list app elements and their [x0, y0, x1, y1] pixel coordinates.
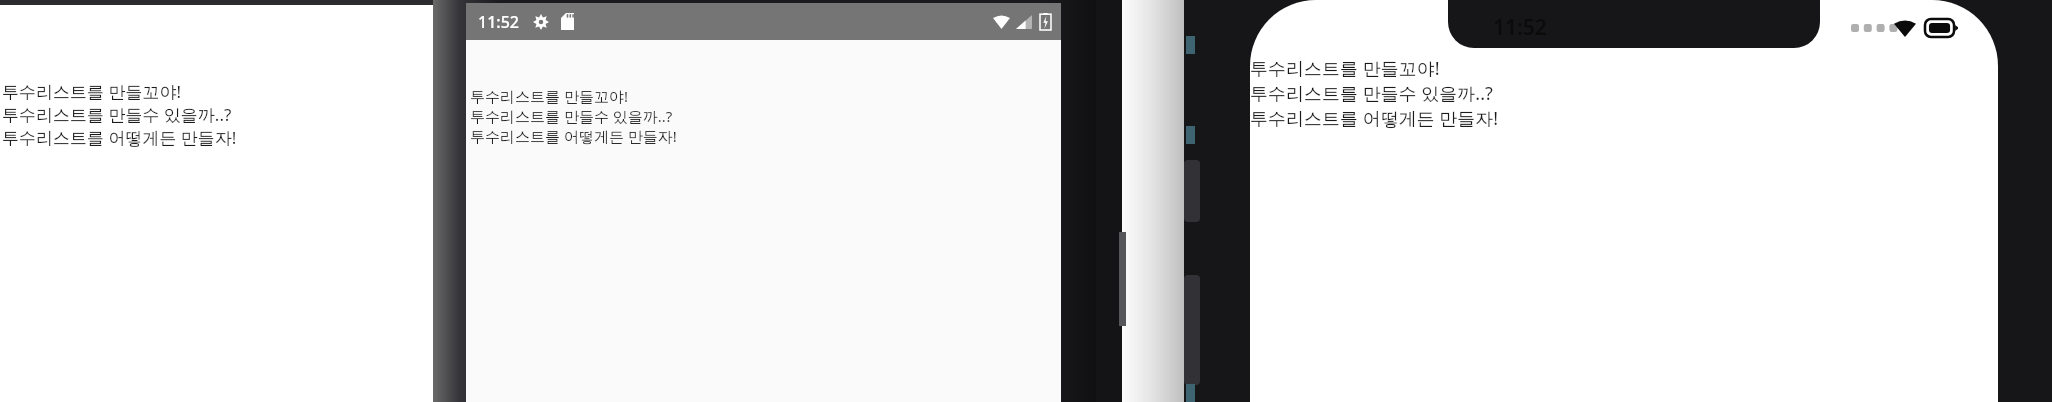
staticText: 투수리스트를 만들수 있을까..?	[1250, 81, 1493, 106]
staticText: 투수리스트를 만들수 있을까..?	[2, 103, 232, 126]
staticText: 투수리스트를 만들수 있을까..?	[470, 106, 673, 126]
staticText: 투수리스트를 만들꼬야!	[470, 86, 628, 106]
staticText: 11:52	[478, 11, 519, 33]
staticText: 투수리스트를 만들꼬야!	[2, 80, 181, 103]
staticText: 투수리스트를 어떻게든 만들자!	[1250, 106, 1499, 131]
staticText: 11:52	[1493, 13, 1547, 42]
staticText: 투수리스트를 만들꼬야!	[1250, 56, 1440, 81]
staticText: 투수리스트를 어떻게든 만들자!	[470, 126, 677, 146]
staticText: 투수리스트를 어떻게든 만들자!	[2, 126, 237, 149]
